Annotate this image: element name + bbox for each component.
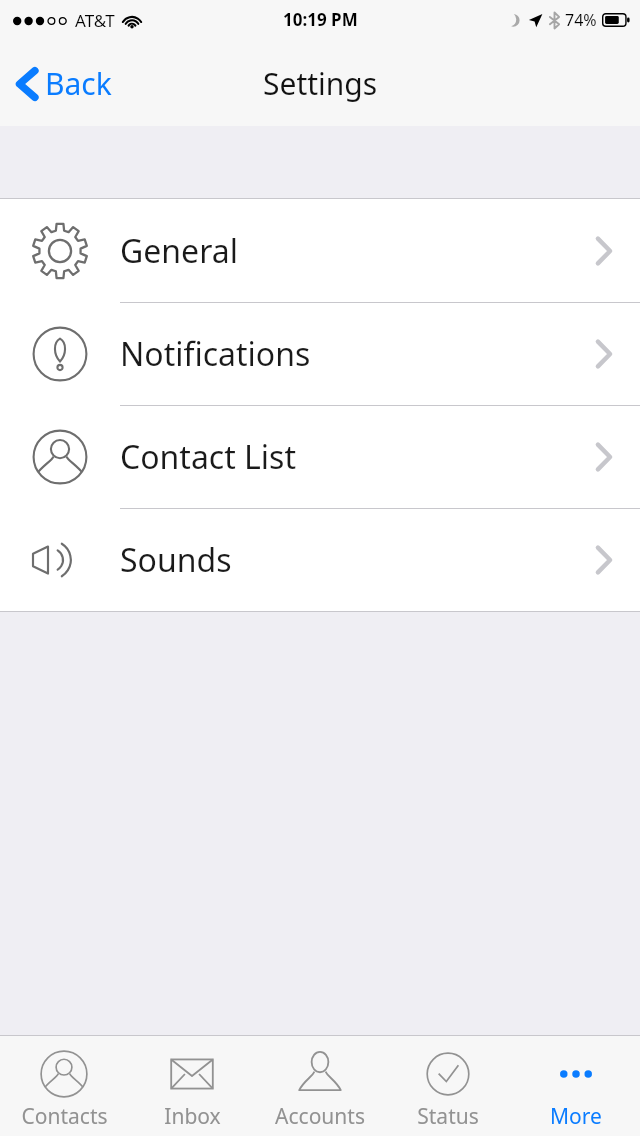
staticText: Inbox	[164, 1102, 221, 1131]
button[interactable]: Contact List	[0, 405, 640, 508]
staticText: 74%	[565, 9, 597, 31]
staticText: General	[120, 229, 238, 273]
button[interactable]: More	[512, 1036, 640, 1136]
button[interactable]: General	[0, 199, 640, 302]
staticText: 10:19 PM	[283, 8, 358, 31]
staticText: AT&T	[75, 9, 115, 32]
staticText: Accounts	[275, 1102, 365, 1131]
button[interactable]: Sounds	[0, 508, 640, 611]
button[interactable]: Inbox	[128, 1036, 256, 1136]
button[interactable]: Status	[384, 1036, 512, 1136]
staticText: Settings	[263, 63, 378, 104]
staticText: More	[550, 1102, 602, 1131]
staticText: Status	[417, 1102, 479, 1131]
button[interactable]: Back	[10, 57, 118, 110]
button[interactable]: Notifications	[0, 302, 640, 405]
staticText: Contacts	[21, 1102, 108, 1131]
staticText: Back	[45, 63, 112, 104]
staticText: Contact List	[120, 435, 297, 479]
button[interactable]: Contacts	[0, 1036, 128, 1136]
button[interactable]: Accounts	[256, 1036, 384, 1136]
staticText: Notifications	[120, 332, 311, 376]
staticText: Sounds	[120, 538, 232, 582]
